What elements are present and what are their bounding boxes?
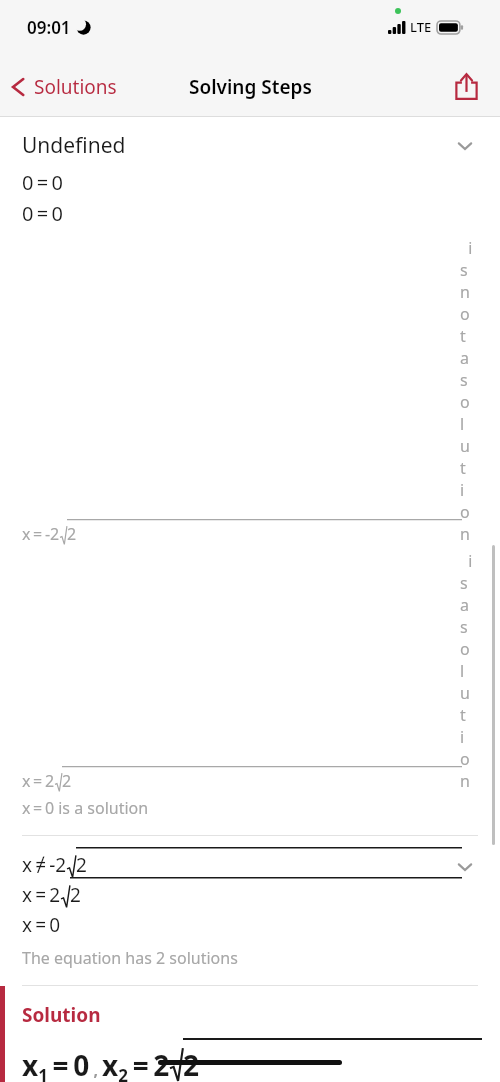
staticText: x = 2: [22, 770, 55, 792]
staticText: x = -2: [22, 523, 60, 545]
staticText: Solutions: [34, 74, 117, 100]
staticText: x = 0: [22, 912, 61, 938]
staticText: LTE: [410, 18, 432, 36]
staticText: Undefined: [22, 131, 126, 160]
button[interactable]: Share: [447, 65, 486, 108]
staticText: 2: [76, 852, 87, 878]
staticText: 0 = 0: [22, 200, 63, 227]
staticText: 2: [62, 770, 72, 792]
button[interactable]: Collapse section: [454, 856, 476, 878]
staticText: x = 0 is a solution: [22, 797, 149, 819]
staticText: 2: [70, 882, 81, 908]
button[interactable]: Collapse section: [454, 135, 476, 157]
staticText: The equation has 2 solutions: [22, 947, 238, 969]
staticText: x ≠ -2: [22, 852, 67, 878]
staticText: 2: [67, 523, 77, 545]
staticText: x1 = 0 , x2 = 2: [22, 1046, 170, 1082]
staticText: x = 2: [22, 882, 61, 908]
staticText: Solution: [22, 1002, 101, 1028]
button[interactable]: Solutions: [0, 68, 127, 106]
staticText: Solving Steps: [189, 74, 312, 100]
staticText: 0 = 0: [22, 169, 63, 196]
staticText: 09:01: [27, 16, 71, 39]
staticText: 2: [183, 1046, 200, 1082]
